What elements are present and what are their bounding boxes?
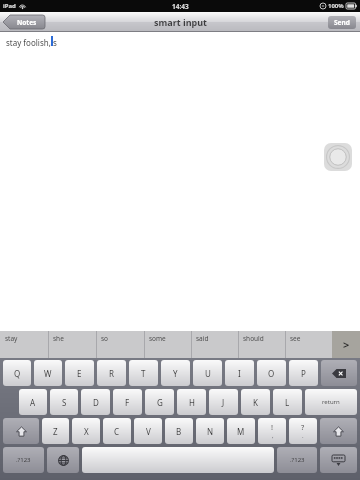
button[interactable]: G <box>145 389 174 415</box>
staticText: Y <box>173 368 178 379</box>
staticText: N <box>207 426 214 437</box>
staticText: Q <box>14 368 21 379</box>
button[interactable]: V <box>134 418 162 444</box>
button[interactable]: so <box>96 331 144 358</box>
staticText: some <box>149 334 166 343</box>
button[interactable]: Space <box>82 447 274 473</box>
button[interactable]: Send <box>328 16 356 29</box>
button[interactable]: return <box>305 389 357 415</box>
staticText: V <box>146 426 151 437</box>
button[interactable]: stay <box>0 331 48 358</box>
button[interactable]: K <box>241 389 270 415</box>
button[interactable]: J <box>209 389 238 415</box>
staticText: ! <box>271 422 274 432</box>
staticText: F <box>125 397 130 408</box>
staticText: .?123 <box>290 456 305 464</box>
button[interactable]: said <box>191 331 238 358</box>
button[interactable]: D <box>81 389 110 415</box>
button[interactable]: Z <box>42 418 69 444</box>
staticText: P <box>301 368 306 379</box>
staticText: see <box>290 334 301 343</box>
button[interactable]: N <box>196 418 224 444</box>
staticText: Z <box>53 426 58 437</box>
button[interactable]: O <box>257 360 286 386</box>
staticText: so <box>101 334 109 343</box>
staticText: L <box>285 397 290 408</box>
staticText: . <box>302 432 304 440</box>
button[interactable]: More suggestions <box>332 331 360 358</box>
button[interactable]: B <box>165 418 193 444</box>
staticText: smart input <box>154 16 207 28</box>
button[interactable]: ! <box>258 418 286 444</box>
staticText: D <box>93 397 99 408</box>
staticText: M <box>237 426 245 437</box>
staticText: O <box>268 368 275 379</box>
staticText: 14:43 <box>172 2 189 11</box>
staticText: B <box>176 426 182 437</box>
staticText: S <box>62 397 67 408</box>
button[interactable]: .?123 <box>277 447 317 473</box>
staticText: R <box>109 368 114 379</box>
staticText: G <box>157 397 163 408</box>
button[interactable]: C <box>103 418 131 444</box>
staticText: Send <box>334 18 350 27</box>
staticText: ? <box>301 422 305 432</box>
staticText: T <box>141 368 146 379</box>
button[interactable]: .?123 <box>3 447 44 473</box>
staticText: .?123 <box>16 456 31 464</box>
staticText: should <box>243 334 264 343</box>
button[interactable]: M <box>227 418 255 444</box>
staticText: stay foolish, s <box>6 37 57 48</box>
staticText: K <box>253 397 258 408</box>
staticText: > <box>343 337 350 352</box>
button[interactable]: U <box>193 360 222 386</box>
staticText: H <box>189 397 195 408</box>
button[interactable]: Shift <box>320 418 357 444</box>
button[interactable]: S <box>50 389 78 415</box>
staticText: , <box>272 432 274 440</box>
staticText: J <box>222 397 225 408</box>
button[interactable]: Assistive touch <box>324 143 352 171</box>
staticText: C <box>114 426 120 437</box>
button[interactable]: Shift <box>3 418 39 444</box>
button[interactable]: T <box>129 360 158 386</box>
button[interactable]: she <box>48 331 96 358</box>
button[interactable]: H <box>177 389 206 415</box>
button[interactable]: E <box>65 360 94 386</box>
staticText: she <box>53 334 64 343</box>
button[interactable]: I <box>225 360 254 386</box>
button[interactable]: A <box>19 389 47 415</box>
staticText: W <box>44 368 52 379</box>
button[interactable]: Hide keyboard <box>320 447 357 473</box>
staticText: I <box>238 368 241 379</box>
button[interactable]: L <box>273 389 302 415</box>
button[interactable]: R <box>97 360 126 386</box>
button[interactable]: Notes <box>3 15 45 29</box>
button[interactable]: Backspace <box>321 360 357 386</box>
button[interactable]: should <box>238 331 285 358</box>
staticText: A <box>30 397 36 408</box>
button[interactable]: F <box>113 389 142 415</box>
button[interactable]: X <box>72 418 100 444</box>
staticText: X <box>84 426 89 437</box>
button[interactable]: ? <box>289 418 317 444</box>
button[interactable]: see <box>285 331 332 358</box>
staticText: stay <box>5 334 18 343</box>
button[interactable]: Y <box>161 360 190 386</box>
button[interactable]: Next keyboard <box>47 447 79 473</box>
button[interactable]: Q <box>3 360 31 386</box>
staticText: U <box>205 368 211 379</box>
staticText: said <box>196 334 209 343</box>
button[interactable]: P <box>289 360 318 386</box>
staticText: 100% <box>328 2 344 10</box>
button[interactable]: W <box>34 360 62 386</box>
staticText: E <box>77 368 82 379</box>
button[interactable]: some <box>144 331 191 358</box>
staticText: Notes <box>17 18 37 27</box>
staticText: return <box>322 398 340 406</box>
staticText: iPad <box>3 2 16 10</box>
